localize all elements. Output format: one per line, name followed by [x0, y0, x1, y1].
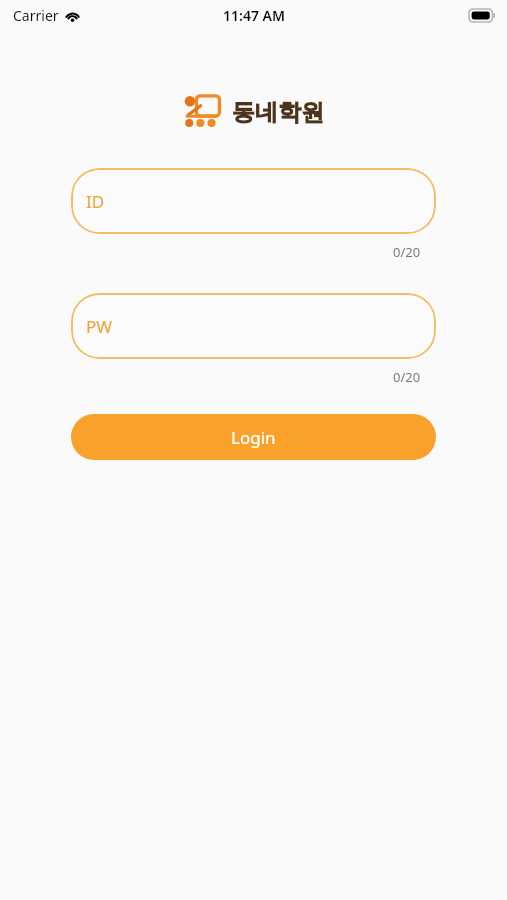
other: Battery	[469, 9, 495, 22]
staticText: 동네학원	[232, 98, 324, 127]
staticText: 동네학원	[232, 98, 324, 127]
staticText: 동네학원	[232, 98, 324, 127]
button[interactable]: Login	[71, 414, 436, 460]
staticText: 동네학원	[232, 98, 324, 127]
other: 동네학원 logo	[184, 94, 220, 128]
button[interactable]: PW	[71, 293, 436, 359]
staticText: 동네학원	[231, 98, 323, 127]
button[interactable]: ID	[71, 168, 436, 234]
staticText: 11:47 AM	[223, 6, 285, 25]
staticText: ID	[86, 190, 105, 213]
staticText: 0/20	[393, 243, 421, 261]
staticText: Login	[231, 426, 276, 449]
staticText: 동네학원	[231, 97, 323, 126]
staticText: Carrier	[13, 6, 59, 25]
other: Wi-Fi	[65, 10, 80, 22]
staticText: 동네학원	[232, 97, 324, 126]
staticText: PW	[86, 315, 113, 338]
staticText: 동네학원	[232, 97, 324, 126]
staticText: 동네학원	[231, 98, 323, 127]
staticText: 0/20	[393, 368, 421, 386]
